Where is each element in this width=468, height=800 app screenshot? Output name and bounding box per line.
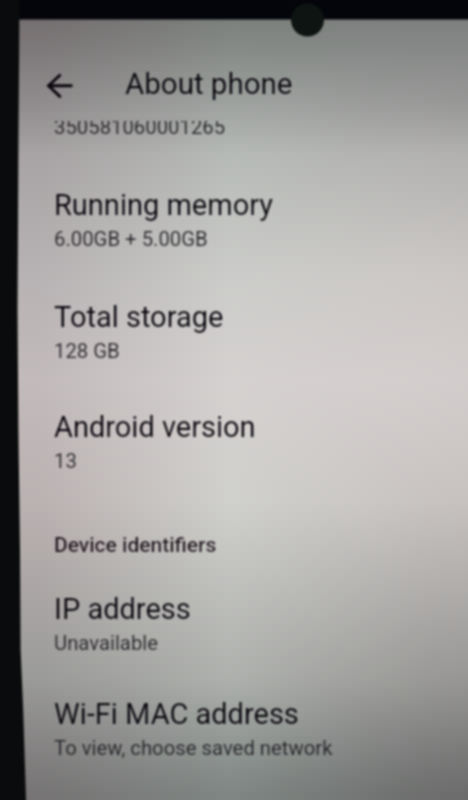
staticText: Total storage	[54, 300, 224, 334]
staticText: Device identifiers	[54, 533, 217, 558]
staticText: 128 GB	[54, 339, 120, 363]
staticText: About phone	[125, 67, 293, 102]
staticText: IP address	[54, 592, 191, 626]
staticText: 13	[54, 449, 77, 473]
staticText: 6.00GB + 5.00GB	[54, 227, 208, 251]
button[interactable]: Wi-Fi MAC address	[0, 678, 468, 750]
staticText: Wi-Fi MAC address	[54, 697, 299, 731]
staticText: Unavailable	[54, 631, 158, 655]
staticText: To view, choose saved network	[54, 736, 333, 760]
staticText: Running memory	[54, 188, 274, 222]
button[interactable]: IP address	[0, 573, 468, 645]
button[interactable]: Total storage	[0, 281, 468, 353]
button[interactable]: Running memory	[0, 169, 468, 241]
button[interactable]: Navigate back	[34, 62, 82, 110]
staticText: Android version	[54, 410, 256, 444]
staticText: 350581060001265	[54, 121, 226, 139]
button[interactable]: Android version	[0, 391, 468, 463]
